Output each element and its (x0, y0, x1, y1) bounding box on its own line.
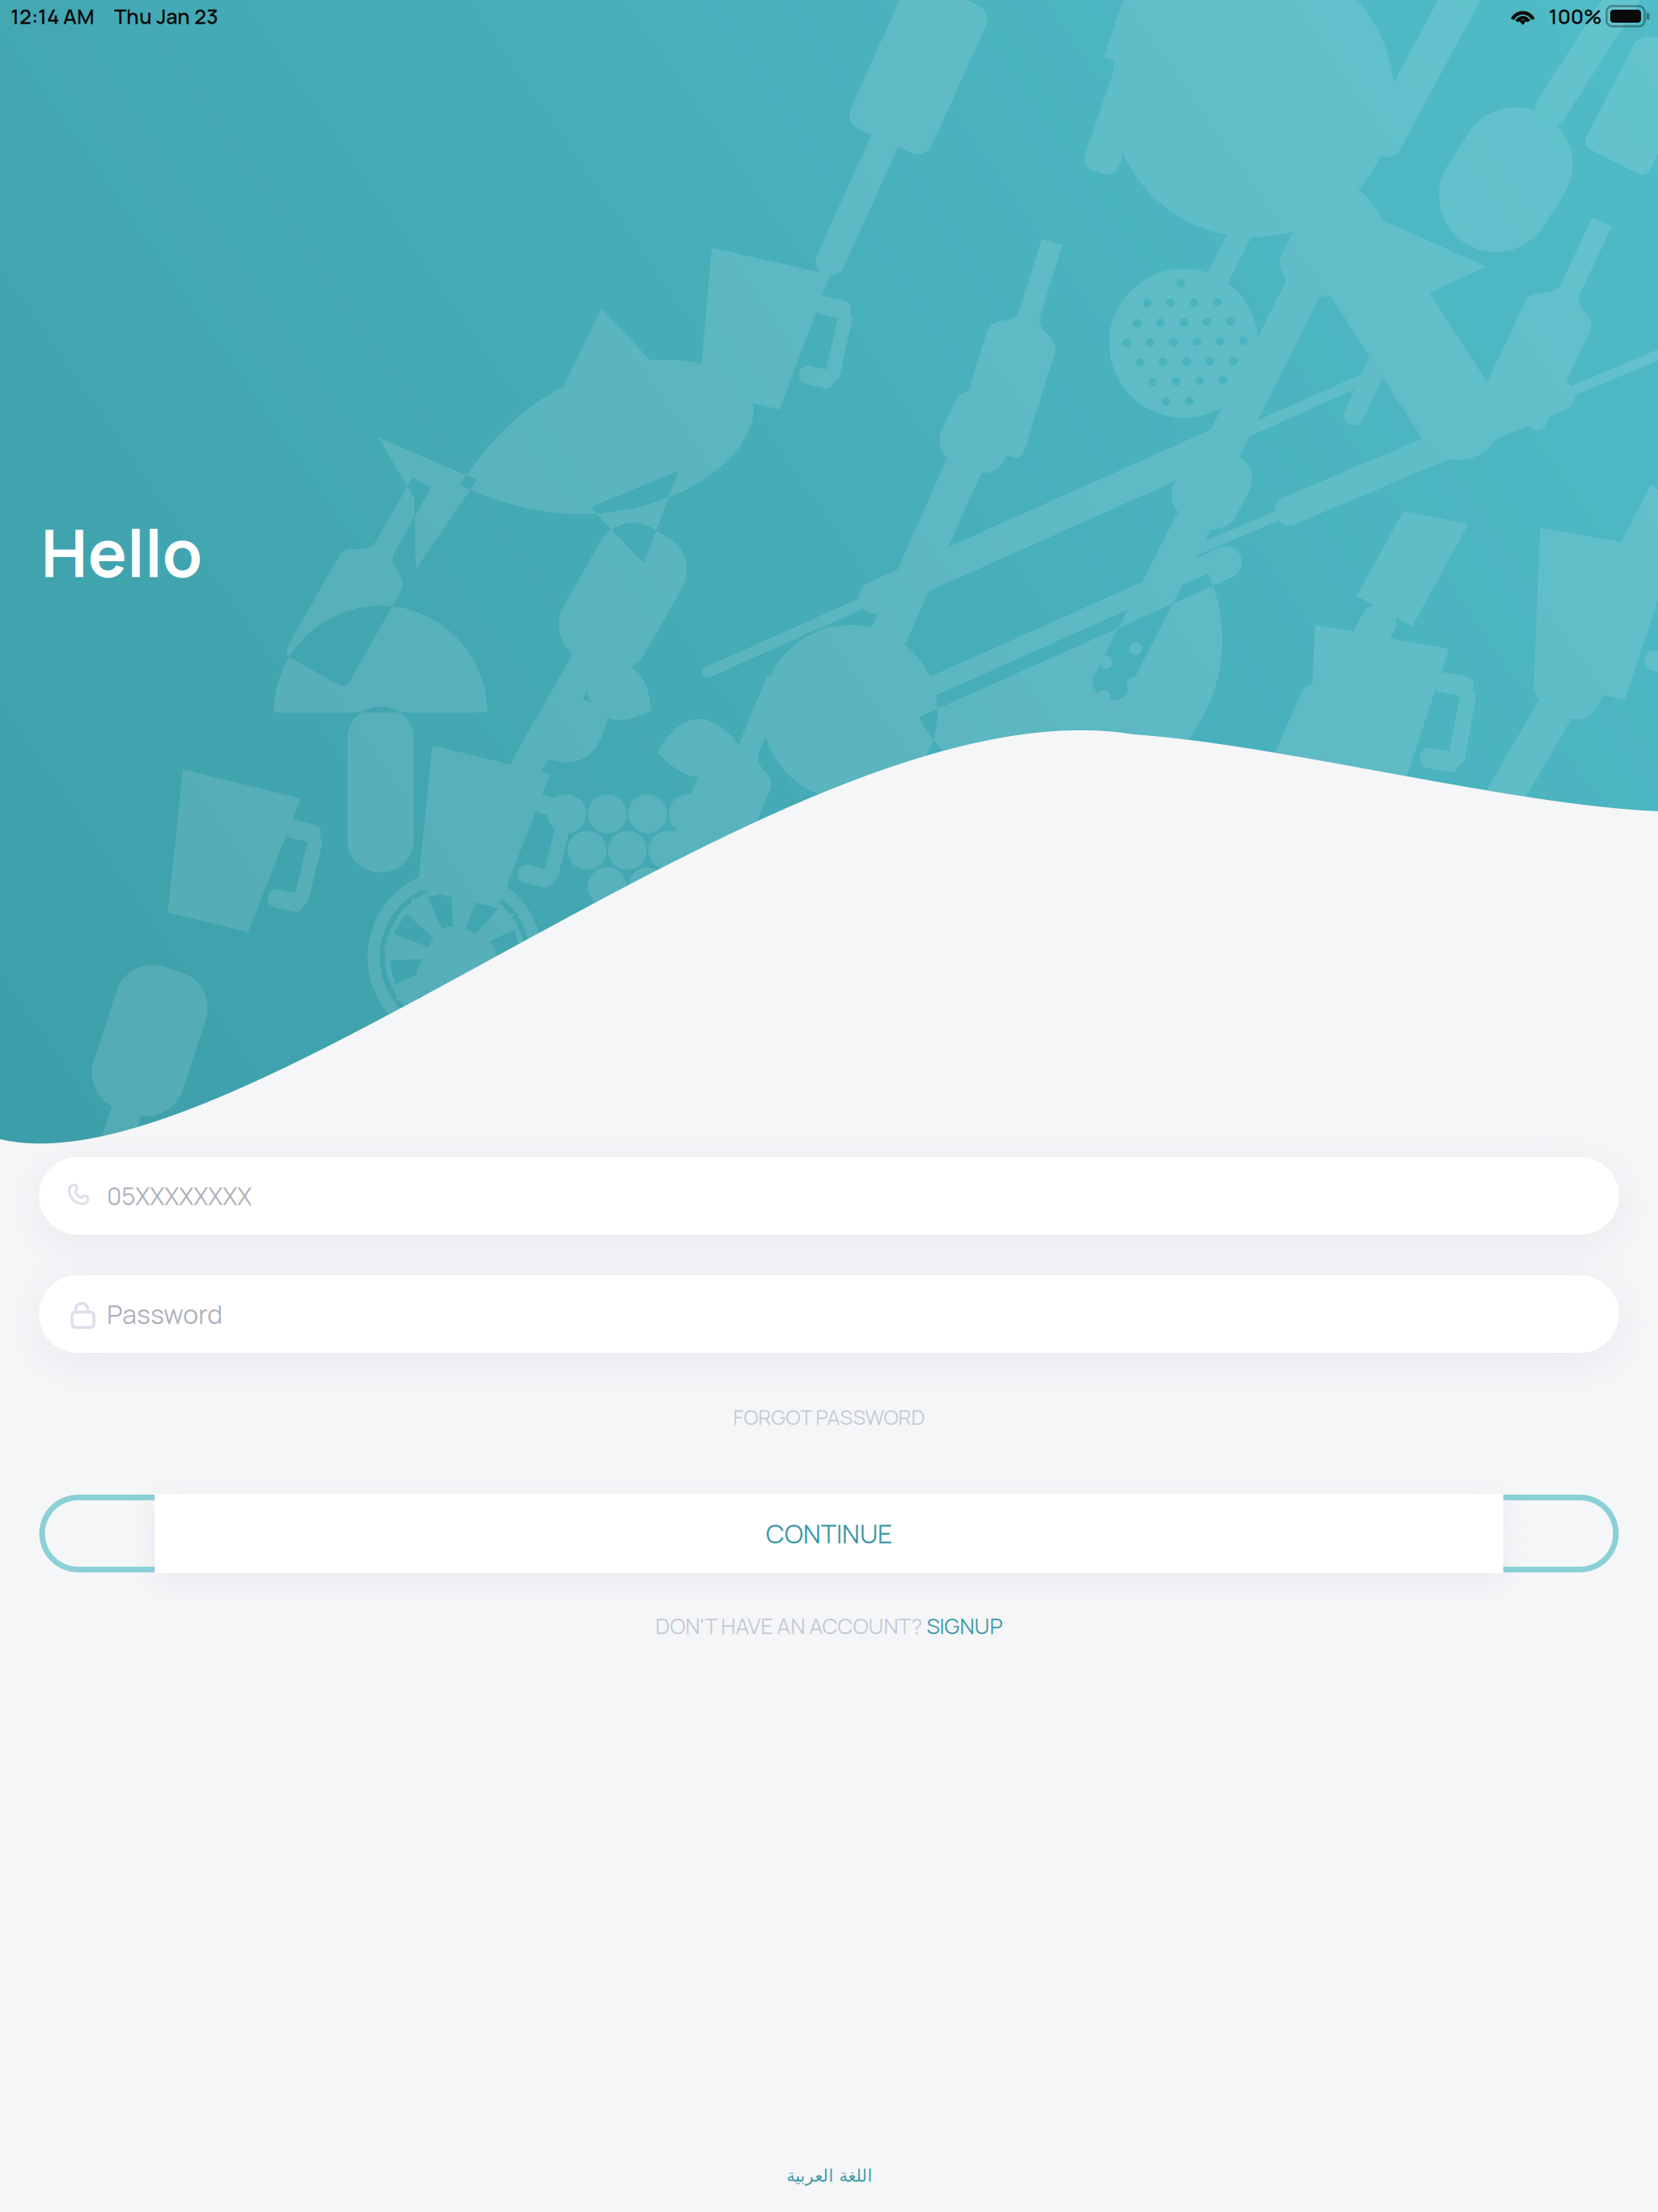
staticText: SIGNUP (927, 1611, 1003, 1641)
staticText: DON'T HAVE AN ACCOUNT? (655, 1611, 927, 1641)
staticText: CONTINUE (766, 1516, 892, 1551)
staticText: اللغة العربية (786, 2166, 872, 2186)
staticText: 12:14 AM (11, 2, 95, 30)
staticText: 100% (1549, 2, 1602, 30)
staticText: Password (107, 1296, 223, 1332)
button[interactable]: FORGOT PASSWORD (701, 1387, 957, 1447)
button[interactable]: اللغة العربية (762, 2151, 896, 2200)
staticText: Hello (41, 508, 202, 596)
button[interactable]: Password (39, 1275, 1619, 1353)
staticText: FORGOT PASSWORD (733, 1403, 925, 1431)
button[interactable]: DON'T HAVE AN ACCOUNT? (636, 1596, 1022, 1655)
staticText: 05XXXXXXXX (107, 1179, 252, 1212)
button[interactable]: CONTINUE (23, 1485, 1635, 1582)
button[interactable]: Phone number (39, 1157, 1619, 1235)
staticText: Thu Jan 23 (114, 2, 218, 30)
